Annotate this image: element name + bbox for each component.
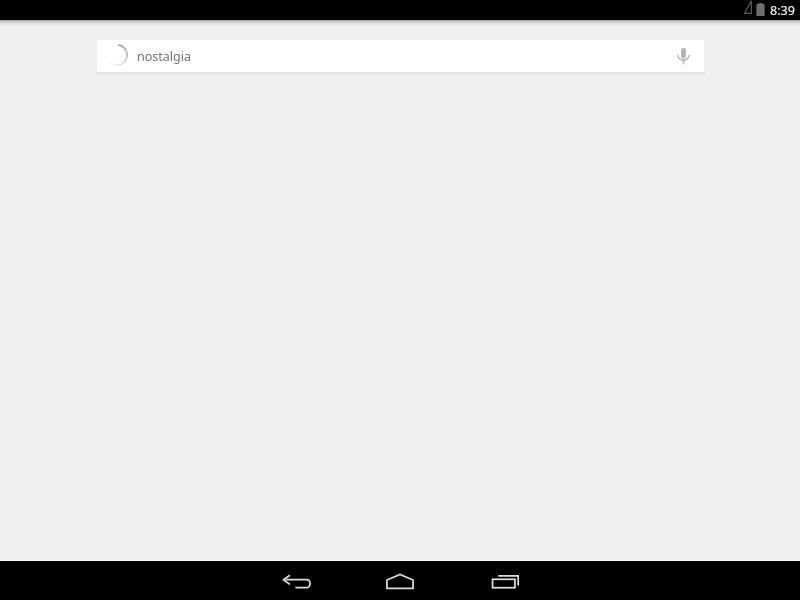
button[interactable]: nostalgia: [97, 40, 704, 72]
button[interactable]: Back: [274, 561, 318, 600]
staticText: 8:39: [770, 2, 795, 19]
button[interactable]: Home: [378, 561, 422, 600]
button[interactable]: Voice search: [663, 40, 704, 72]
button[interactable]: Recent apps: [483, 561, 527, 600]
staticText: nostalgia: [137, 48, 191, 65]
